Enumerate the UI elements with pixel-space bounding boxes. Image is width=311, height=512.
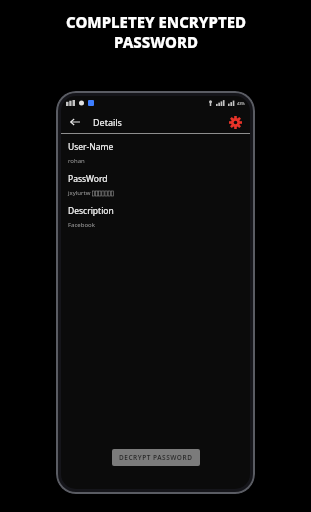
staticText: Facebook xyxy=(68,221,95,229)
button[interactable]: Back xyxy=(67,114,83,130)
staticText: DECRYPT PASSWORD xyxy=(119,453,193,462)
staticText: jxylurtw xyxy=(68,189,91,197)
staticText: 43% xyxy=(237,101,245,106)
button[interactable]: DECRYPT PASSWORD xyxy=(112,449,200,466)
staticText: Description xyxy=(68,205,114,217)
staticText: COMPLETEY ENCRYPTED xyxy=(66,12,246,32)
staticText: PASSWORD xyxy=(114,32,198,52)
staticText: rohan xyxy=(68,157,85,165)
button[interactable]: Settings xyxy=(226,113,244,131)
staticText: User-Name xyxy=(68,141,114,153)
staticText: PassWord xyxy=(68,173,108,185)
staticText: Details xyxy=(93,116,122,128)
